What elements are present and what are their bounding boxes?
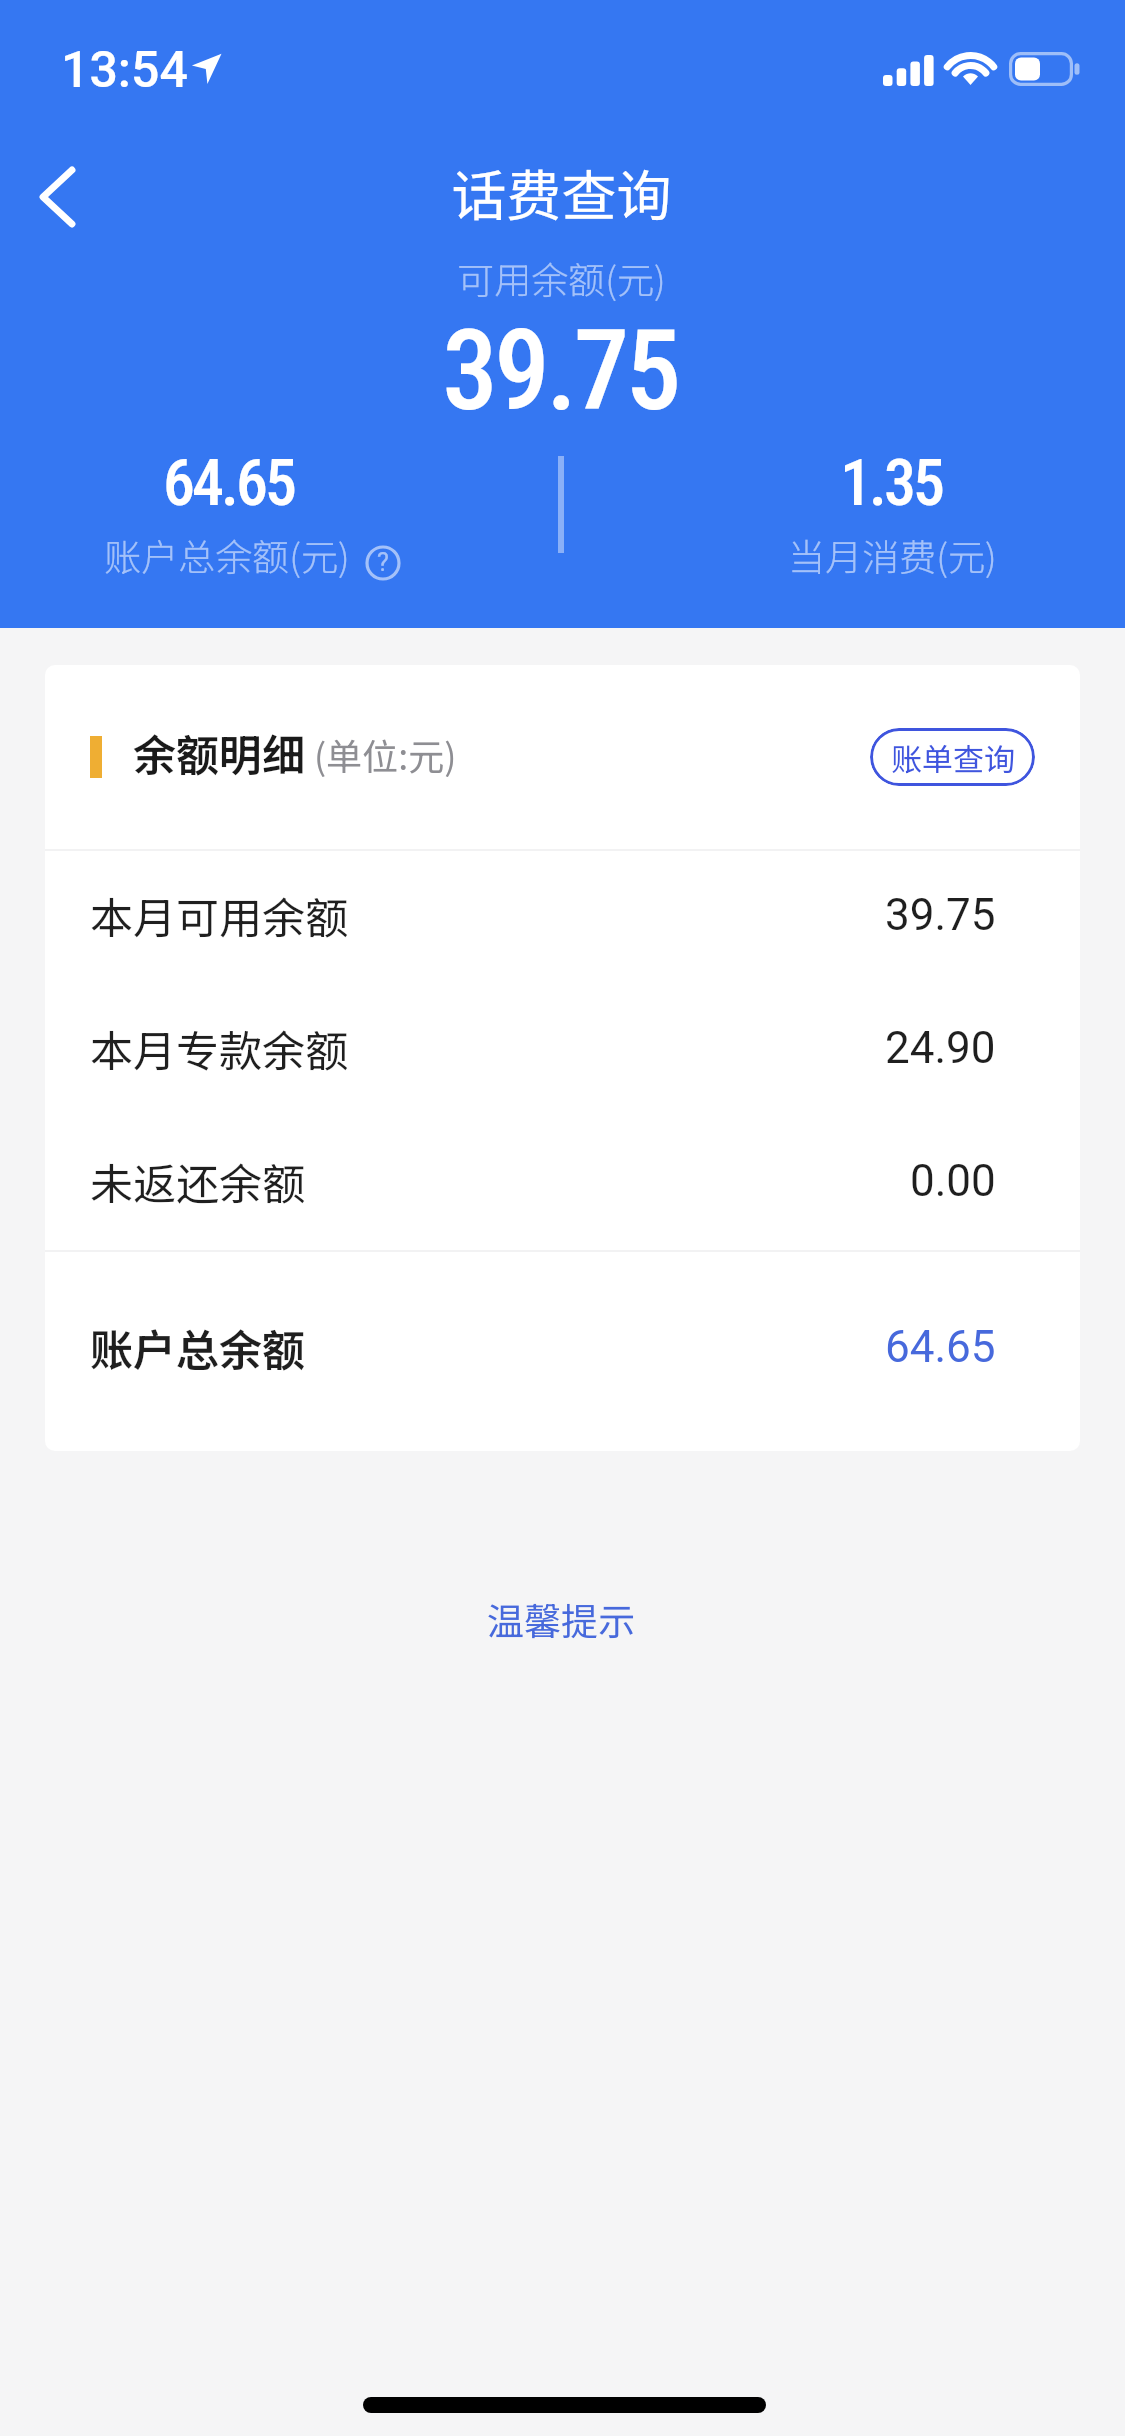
staticText: 24.90 [885,1022,996,1074]
button[interactable]: 温馨提示 [453,1576,668,1630]
staticText: 本月可用余额 [90,884,348,946]
staticText: (单位:元) [314,728,457,780]
button[interactable]: Back [10,144,115,249]
staticText: 64.65 [163,446,294,521]
staticText: 39.75 [442,306,678,436]
staticText: 64.65 [885,1321,996,1373]
staticText: 未返还余额 [90,1150,305,1212]
button[interactable]: 未返还余额 [90,1117,996,1250]
staticText: 13:54 [61,41,188,100]
staticText: 当月消费(元) [788,528,997,582]
staticText: 本月专款余额 [90,1017,348,1079]
staticText: 账户总余额(元) [104,528,350,582]
staticText: 0.00 [910,1155,996,1207]
staticText: 账户总余额 [90,1316,305,1378]
staticText: 1.35 [840,446,942,521]
staticText: 39.75 [885,889,996,941]
staticText: 温馨提示 [487,1592,635,1646]
button[interactable]: 本月专款余额 [90,984,996,1117]
button[interactable]: 本月可用余额 [90,851,996,984]
staticText: 账单查询 [891,735,1015,780]
staticText: 话费查询 [451,152,672,232]
staticText: 可用余额(元) [457,251,666,305]
button[interactable]: Help [362,542,404,584]
button[interactable]: 账户总余额 [90,1252,996,1451]
staticText: 余额明细 [133,721,305,783]
button[interactable]: 账单查询 [870,728,1035,786]
staticText: ? [377,548,389,577]
